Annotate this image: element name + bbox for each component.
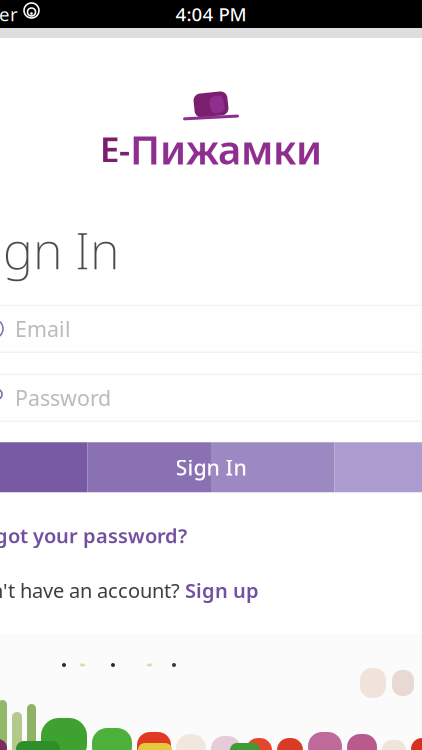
staticText: Sign In [0, 216, 119, 283]
staticText: Forgot your password? [0, 522, 187, 549]
staticText: 4:04 PM [175, 2, 246, 26]
staticText: Е- [100, 126, 130, 172]
button[interactable]: Sign up [185, 577, 259, 603]
staticText: Sign up [185, 577, 259, 603]
button[interactable]: Forgot your password? [0, 522, 187, 549]
button[interactable]: Sign In [0, 442, 422, 492]
staticText: Password [15, 384, 111, 412]
staticText: Don't have an account? [0, 577, 180, 603]
staticText: Sign In [175, 453, 246, 481]
staticText: Пижамки [130, 122, 322, 175]
staticText: Carrier [0, 2, 18, 26]
staticText: Email [15, 315, 71, 343]
